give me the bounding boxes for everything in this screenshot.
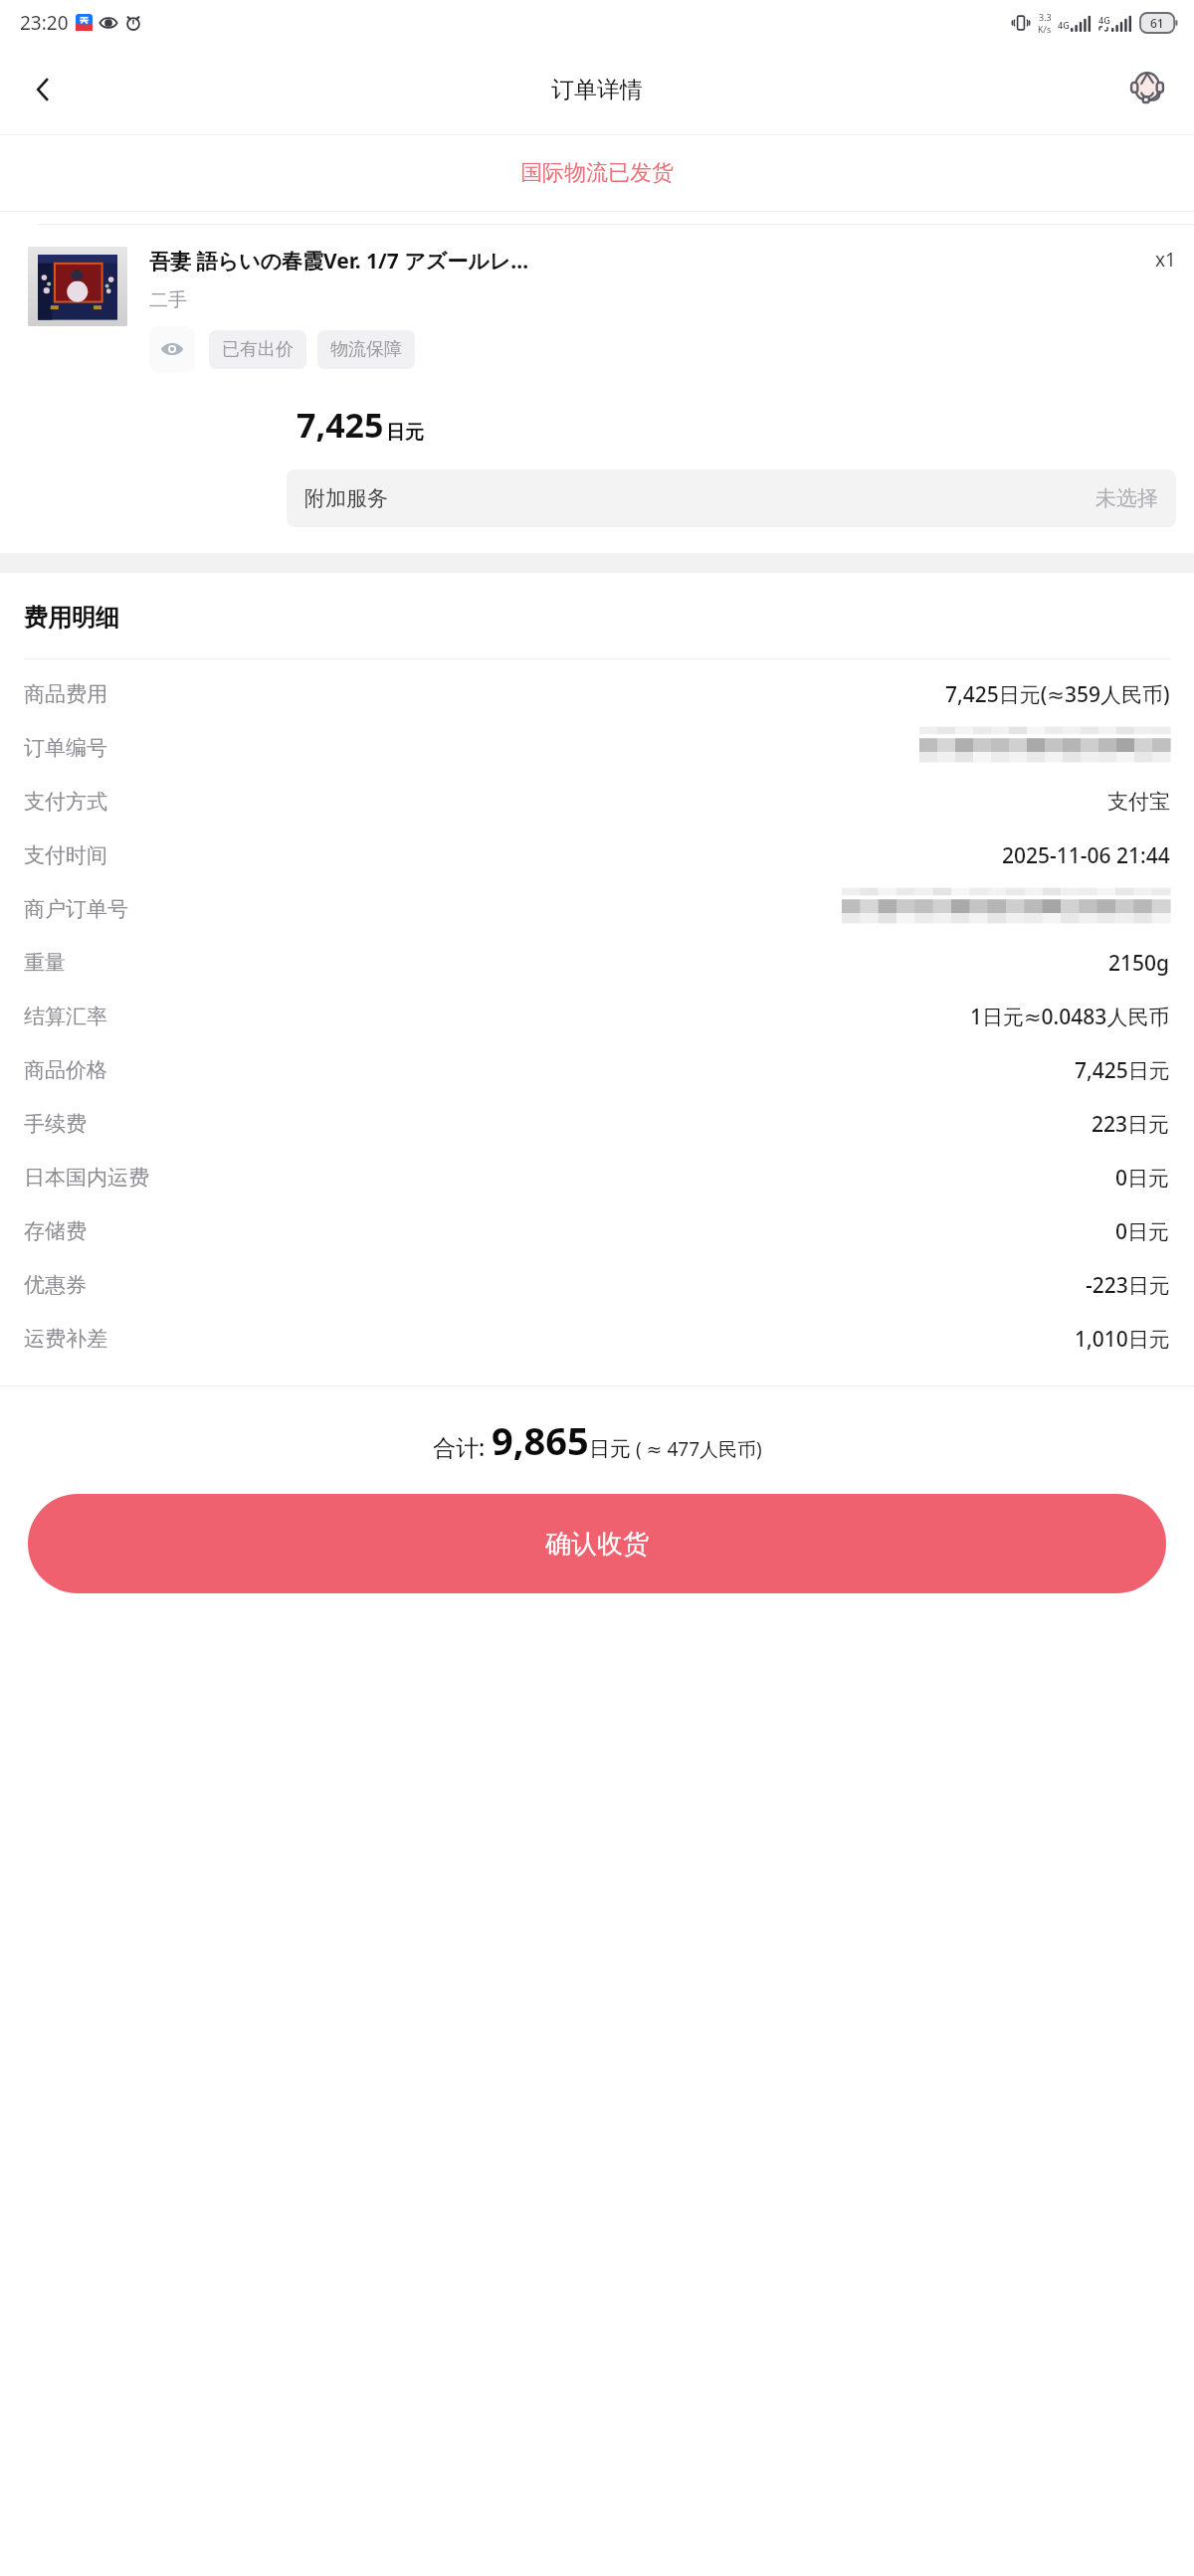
- staticText: 商品价格: [24, 1057, 107, 1083]
- button[interactable]: 确认收货: [28, 1494, 1166, 1593]
- staticText: 商户订单号: [24, 896, 128, 922]
- staticText: 9,865: [492, 1414, 589, 1466]
- button[interactable]: Customer service: [1116, 59, 1178, 120]
- button[interactable]: 物流保障: [317, 330, 415, 369]
- staticText: 日本国内运费: [24, 1165, 149, 1191]
- staticText: 运费补差: [24, 1326, 107, 1352]
- staticText: 重量: [24, 950, 66, 976]
- staticText: 223日元: [1092, 1110, 1170, 1139]
- staticText: 0日元: [1115, 1164, 1170, 1193]
- staticText: 附加服务: [304, 485, 388, 511]
- staticText: 结算汇率: [24, 1004, 107, 1029]
- staticText: 已有出价: [222, 338, 294, 361]
- staticText: 2150g: [1108, 949, 1170, 978]
- staticText: 61: [1150, 15, 1164, 31]
- staticText: 4G: [1058, 19, 1070, 31]
- staticText: 1,010日元: [1075, 1325, 1170, 1354]
- staticText: 0日元: [1115, 1217, 1170, 1246]
- staticText: 23:20: [20, 10, 69, 36]
- staticText: 7,425: [297, 402, 384, 448]
- staticText: 日元: [589, 1436, 631, 1462]
- button[interactable]: Product image: [28, 247, 127, 326]
- staticText: 商品费用: [24, 681, 107, 707]
- staticText: 二手: [149, 288, 187, 312]
- staticText: 3.3: [1039, 11, 1052, 23]
- staticText: 2025-11-06 21:44: [1002, 841, 1170, 870]
- staticText: 7,425日元(≈359人民币): [945, 680, 1170, 709]
- staticText: -223日元: [1086, 1271, 1170, 1300]
- staticText: 订单编号: [24, 735, 107, 761]
- staticText: 合计:: [433, 1431, 486, 1462]
- staticText: 确认收货: [545, 1528, 649, 1561]
- staticText: 1日元≈0.0483人民币: [970, 1003, 1170, 1031]
- staticText: 4G: [1098, 14, 1110, 26]
- staticText: 吾妻 語らいの春霞Ver. 1/7 アズールレ…: [149, 247, 1141, 276]
- button[interactable]: Preview: [149, 326, 195, 372]
- staticText: 支付时间: [24, 842, 107, 868]
- staticText: 国际物流已发货: [520, 159, 674, 187]
- staticText: 物流保障: [330, 338, 402, 361]
- staticText: x1: [1155, 247, 1176, 273]
- button[interactable]: Back: [14, 61, 72, 118]
- staticText: 优惠券: [24, 1272, 87, 1298]
- staticText: 日元: [386, 421, 424, 445]
- staticText: 订单详情: [551, 76, 643, 104]
- button[interactable]: 已有出价: [209, 330, 306, 369]
- staticText: 7,425日元: [1075, 1056, 1170, 1085]
- staticText: 费用明细: [24, 603, 119, 633]
- staticText: 支付方式: [24, 789, 107, 815]
- staticText: ( ≈ 477人民币): [631, 1436, 762, 1462]
- staticText: 未选择: [1095, 485, 1158, 511]
- staticText: 支付宝: [1107, 789, 1170, 815]
- button[interactable]: 附加服务: [287, 469, 1176, 527]
- staticText: 手续费: [24, 1111, 87, 1137]
- staticText: 存储费: [24, 1218, 87, 1244]
- staticText: K/s: [1038, 23, 1052, 35]
